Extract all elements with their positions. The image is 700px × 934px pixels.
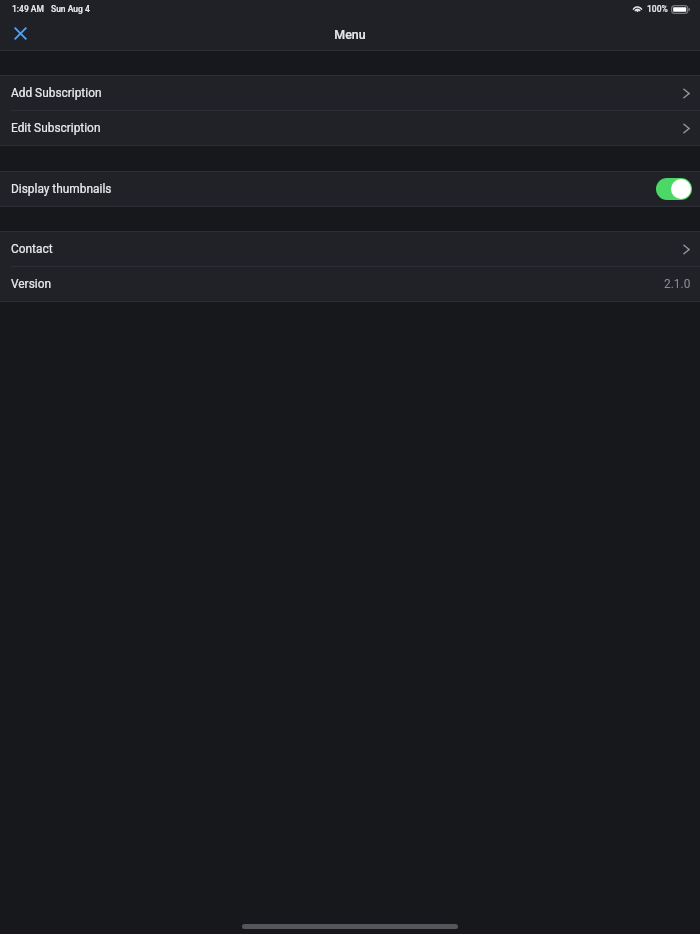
staticText: Menu (334, 27, 366, 42)
button[interactable]: Close (4, 17, 36, 49)
staticText: Contact (11, 242, 53, 256)
button[interactable]: Display thumbnails (0, 172, 700, 206)
staticText: Version (11, 277, 52, 291)
button[interactable]: Edit Subscription (0, 111, 700, 145)
staticText: 1:49 AM (12, 4, 44, 14)
button[interactable]: Add Subscription (0, 76, 700, 110)
staticText: Sun Aug 4 (51, 4, 90, 14)
button[interactable]: Contact (0, 232, 700, 266)
staticText: Add Subscription (11, 86, 102, 100)
button[interactable]: Display thumbnails toggle (656, 178, 692, 200)
staticText: Edit Subscription (11, 121, 101, 135)
staticText: 2.1.0 (664, 277, 691, 291)
button[interactable]: Version (0, 267, 700, 301)
staticText: Display thumbnails (11, 182, 112, 196)
staticText: 100% (647, 4, 668, 14)
